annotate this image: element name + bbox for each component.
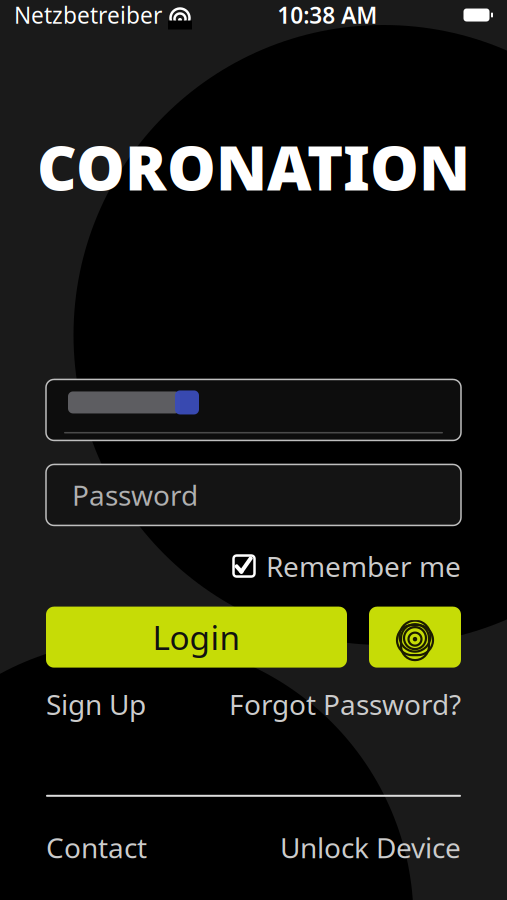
staticText: Login (152, 615, 240, 659)
button[interactable]: Contact (46, 829, 147, 866)
staticText: Sign Up (46, 686, 146, 723)
staticText: Contact (46, 829, 147, 866)
button[interactable]: Unlock Device (280, 829, 461, 866)
button[interactable]: Login with fingerprint (369, 607, 461, 668)
staticText: Netzbetreiber (14, 0, 162, 30)
staticText: Unlock Device (280, 829, 461, 866)
button[interactable]: Forgot Password? (229, 686, 461, 723)
button[interactable]: Sign Up (46, 686, 146, 723)
button[interactable]: Login (46, 607, 347, 668)
button[interactable]: Username (46, 379, 461, 440)
staticText: Forgot Password? (229, 686, 461, 723)
staticText: 10:38 AM (277, 0, 377, 30)
staticText: Password (72, 476, 198, 514)
button[interactable]: Remember me (232, 547, 461, 585)
button[interactable]: Password (46, 464, 461, 525)
staticText: Remember me (266, 547, 461, 585)
staticText: CORONATION (37, 126, 470, 207)
